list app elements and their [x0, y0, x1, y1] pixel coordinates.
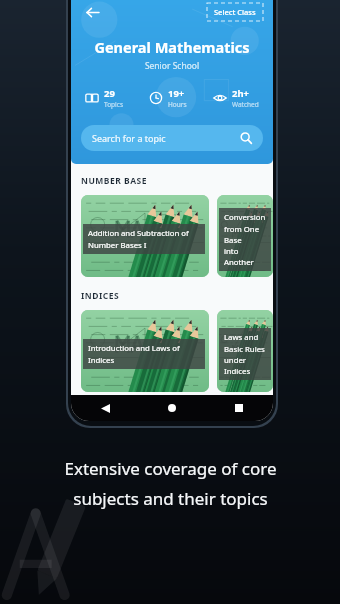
staticText: 19+	[168, 87, 185, 100]
staticText: Laws and Basic Rules under Indices	[224, 332, 266, 376]
button[interactable]: Introduction and Laws of Indices	[81, 310, 209, 392]
staticText: INDICES	[81, 290, 120, 302]
staticText: Extensive coverage of core	[64, 457, 277, 480]
staticText: Senior School	[71, 60, 273, 72]
button[interactable]: Select Class	[207, 3, 263, 21]
button[interactable]: Search for a topic	[81, 125, 263, 151]
staticText: Addition and Subtraction of Number Bases…	[88, 228, 189, 250]
staticText: subjects and their topics	[73, 487, 268, 510]
button[interactable]: Laws and Basic Rules under Indices	[217, 310, 273, 392]
staticText: Select Class	[214, 7, 256, 17]
button[interactable]: Home	[159, 395, 185, 421]
staticText: Introduction and Laws of Indices	[88, 343, 180, 365]
button[interactable]: Recent apps	[226, 395, 252, 421]
staticText: Conversion from One Base into Another	[224, 212, 266, 267]
staticText: 29	[104, 87, 115, 100]
staticText: Search for a topic	[92, 132, 166, 144]
button[interactable]: Conversion from One Base into Another	[217, 195, 273, 277]
staticText: NUMBER BASE	[81, 175, 148, 187]
staticText: Topics	[104, 100, 123, 109]
staticText: Hours	[168, 100, 187, 109]
button[interactable]: Back	[92, 395, 118, 421]
staticText: General Mathematics	[71, 37, 273, 57]
staticText: Watched	[232, 100, 259, 109]
button[interactable]: Back	[81, 1, 103, 23]
staticText: 2h+	[232, 87, 250, 100]
button[interactable]: Addition and Subtraction of Number Bases…	[81, 195, 209, 277]
